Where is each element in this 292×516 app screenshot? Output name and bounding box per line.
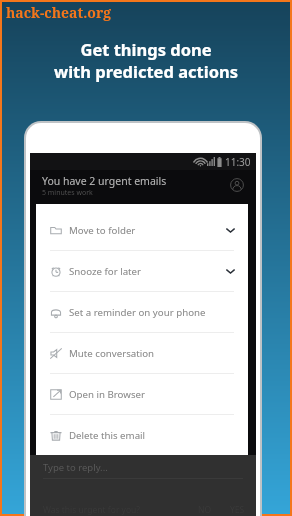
button[interactable]: Account (226, 174, 248, 196)
staticText: Get things done (80, 38, 212, 60)
button[interactable]: Move to folder (36, 210, 248, 250)
staticText: Move to folder (69, 224, 136, 237)
staticText: Delete this email (69, 429, 146, 442)
staticText: 5 minutes work (42, 188, 93, 198)
button[interactable]: Delete this email (36, 415, 248, 455)
staticText: with predicted actions (54, 60, 238, 82)
button[interactable]: Set a reminder on your phone (36, 292, 248, 332)
button[interactable]: Mute conversation (36, 333, 248, 373)
staticText: Set a reminder on your phone (69, 306, 206, 319)
staticText: Mute conversation (69, 347, 155, 360)
staticText: Snooze for later (69, 265, 142, 278)
staticText: hack-cheat.org (6, 3, 112, 22)
staticText: 11:30 (225, 155, 251, 169)
staticText: You have 2 urgent emails (42, 174, 167, 188)
staticText: Type to reply... (43, 461, 108, 474)
staticText: Open in Browser (69, 388, 145, 401)
button[interactable]: Open in Browser (36, 374, 248, 414)
button[interactable]: Snooze for later (36, 251, 248, 291)
